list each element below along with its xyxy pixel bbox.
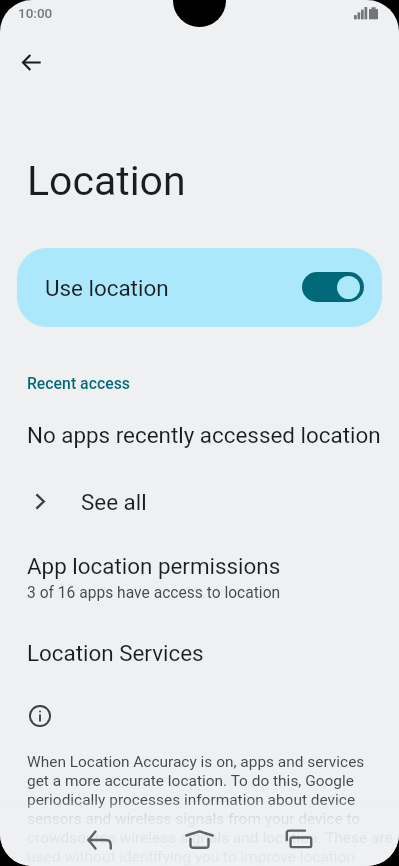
staticText: Location Services [27, 640, 204, 666]
button[interactable]: App location permissions [0, 550, 399, 608]
staticText: Use location [45, 275, 169, 301]
button[interactable]: Home [184, 824, 215, 854]
button[interactable]: Use location [17, 248, 382, 327]
staticText: Recent access [27, 374, 130, 393]
staticText: 10:00 [18, 5, 53, 21]
staticText: No apps recently accessed location [27, 422, 381, 448]
staticText: 3 of 16 apps have access to location [27, 584, 281, 602]
button[interactable]: See all [0, 480, 399, 524]
button[interactable]: Back [85, 825, 114, 855]
staticText: Location [27, 157, 186, 205]
button[interactable]: Navigate up [11, 42, 52, 83]
staticText: When Location Accuracy is on, apps and s… [27, 753, 399, 866]
button[interactable]: Recent apps [282, 822, 314, 852]
staticText: App location permissions [27, 553, 281, 579]
staticText: See all [81, 489, 147, 515]
